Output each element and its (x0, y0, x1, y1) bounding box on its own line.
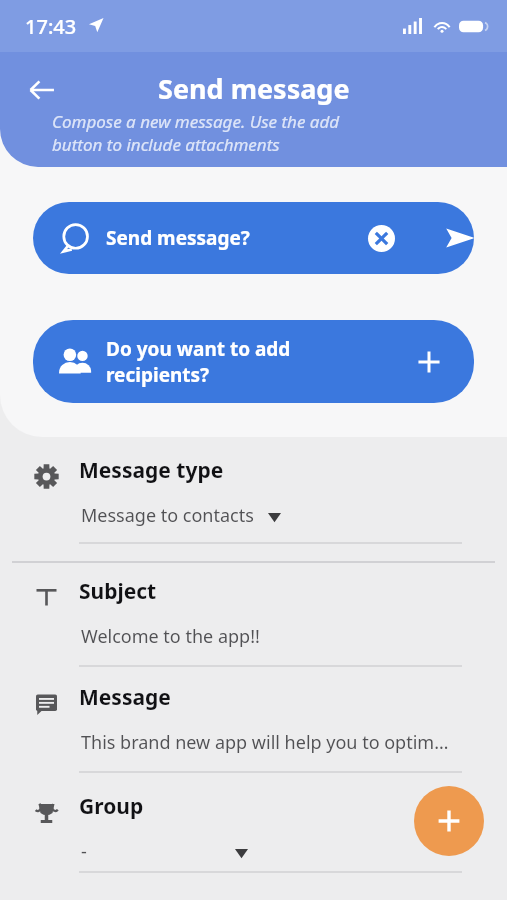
button[interactable]: Cancel (361, 218, 401, 258)
staticText: Group (79, 792, 144, 821)
staticText: 17:43 (25, 13, 77, 40)
button[interactable]: This brand new app will help you to opti… (81, 730, 461, 755)
staticText: Message (79, 683, 171, 712)
button[interactable]: - (81, 839, 461, 864)
button[interactable]: Welcome to the app!! (81, 624, 461, 649)
button[interactable]: Back (20, 68, 64, 112)
staticText: Send message (158, 70, 350, 107)
staticText: Subject (79, 577, 157, 606)
button[interactable]: Add recipients (408, 341, 450, 383)
staticText: Compose a new message. Use the add butto… (52, 110, 340, 156)
button[interactable]: Send (438, 216, 474, 260)
staticText: Send message? (106, 225, 250, 251)
button[interactable]: Send message? (33, 202, 474, 274)
button[interactable]: Message to contacts (81, 503, 461, 528)
staticText: Message type (79, 456, 224, 485)
button[interactable]: Do you want to add recipients? (33, 320, 474, 403)
staticText: Do you want to add recipients? (106, 336, 291, 387)
button[interactable]: Add attachment (414, 786, 484, 856)
